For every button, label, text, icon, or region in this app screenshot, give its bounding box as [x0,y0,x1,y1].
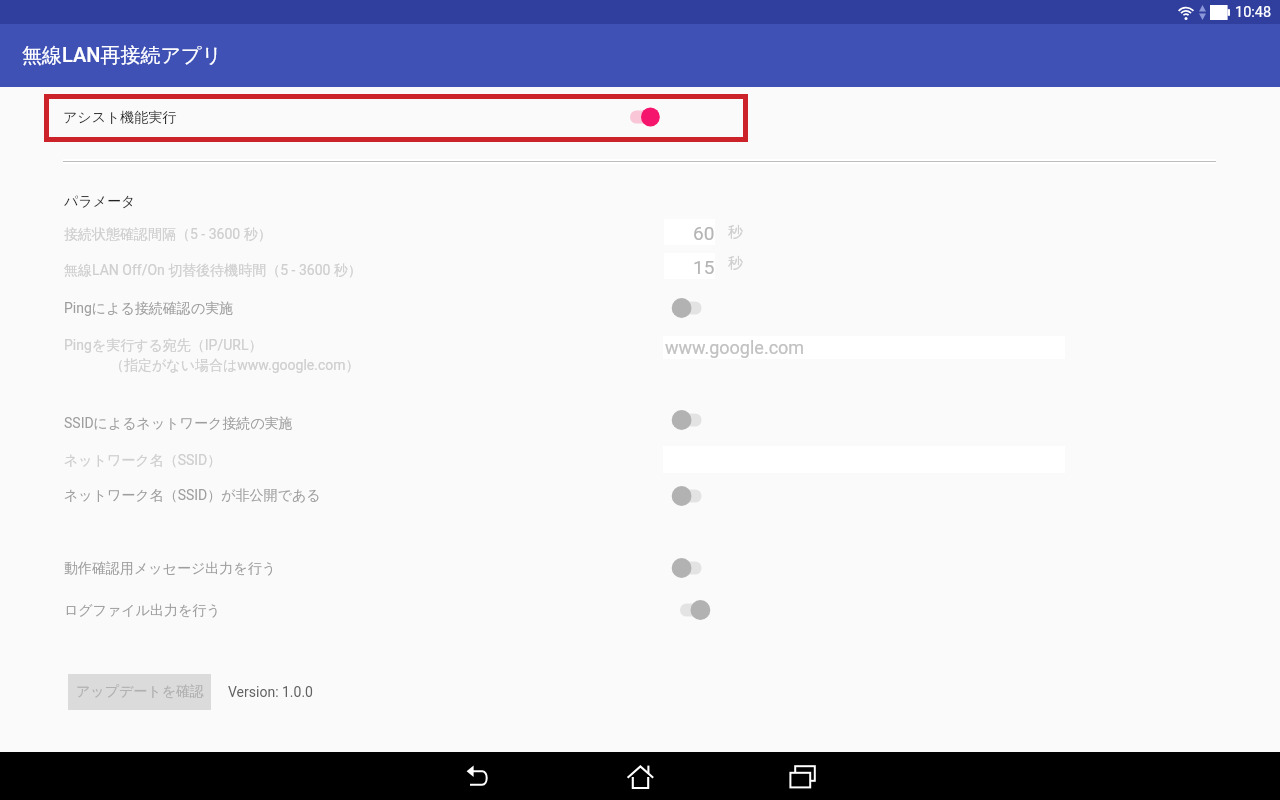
staticText: ネットワーク名（SSID） [64,452,222,470]
staticText: 60 [693,222,715,244]
button[interactable]: ネットワーク名（SSID）が非公開である [0,477,1280,513]
button[interactable]: アシスト機能実行 [49,99,743,137]
button[interactable]: ログファイル出力を行う [678,599,712,621]
button[interactable]: Back [454,752,502,800]
staticText: パラメータ [64,193,136,211]
staticText: 接続状態確認間隔（5 - 3600 秒） [64,226,272,244]
staticText: Pingを実行する宛先（IP/URL） [64,337,263,355]
staticText: Version: 1.0.0 [228,684,313,700]
staticText: 動作確認用メッセージ出力を行う [64,560,276,578]
staticText: 15 [693,256,715,278]
staticText: 10:48 [1235,4,1272,21]
button[interactable]: www.google.com [663,336,1065,359]
button[interactable]: 動作確認用メッセージ出力を行う [670,557,704,579]
button[interactable]: Recent apps [778,752,826,800]
button[interactable]: アシスト機能実行 [628,106,662,128]
staticText: 秒 [728,223,743,242]
button[interactable]: 動作確認用メッセージ出力を行う [0,549,1280,587]
button[interactable]: Pingによる接続確認の実施 [0,284,1280,322]
staticText: 無線LAN Off/On 切替後待機時間（5 - 3600 秒） [64,262,362,280]
button[interactable]: アップデートを確認 [68,674,211,710]
staticText: ネットワーク名（SSID）が非公開である [64,487,321,505]
staticText: アップデートを確認 [76,683,204,701]
button[interactable]: ネットワーク名（SSID）が非公開である [670,485,704,507]
staticText: Pingによる接続確認の実施 [64,300,234,318]
button[interactable]: 接続状態確認間隔（5 - 3600 秒） [0,216,1280,250]
staticText: 秒 [728,254,743,273]
button[interactable]: Home [616,752,664,800]
button[interactable]: ネットワーク名（SSID） [0,439,1280,475]
button[interactable]: SSIDによるネットワーク接続の実施 [0,399,1280,437]
staticText: www.google.com [665,337,805,358]
button[interactable]: Pingによる接続確認の実施 [670,297,704,319]
staticText: SSIDによるネットワーク接続の実施 [64,415,293,433]
staticText: 無線LAN再接続アプリ [22,43,222,68]
staticText: ログファイル出力を行う [64,602,221,620]
button[interactable]: Pingを実行する宛先（IP/URL） [0,327,1280,377]
staticText: アシスト機能実行 [63,109,177,127]
button[interactable]: 60 [664,219,715,245]
button[interactable]: 15 [664,253,715,279]
button[interactable]: 無線LAN Off/On 切替後待機時間（5 - 3600 秒） [0,250,1280,284]
button[interactable]: ログファイル出力を行う [0,591,1280,629]
staticText: （指定がない場合はwww.google.com） [110,357,360,375]
button[interactable]: SSIDによるネットワーク接続の実施 [670,409,704,431]
